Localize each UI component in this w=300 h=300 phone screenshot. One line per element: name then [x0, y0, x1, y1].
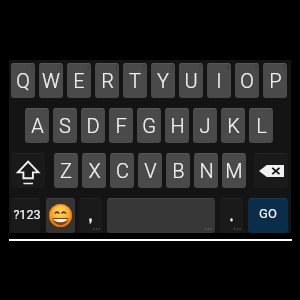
staticText: M — [225, 159, 243, 182]
button[interactable]: L — [249, 108, 273, 143]
staticText: I — [216, 69, 222, 92]
staticText: B — [172, 159, 185, 182]
staticText: H — [170, 114, 185, 137]
staticText: S — [59, 114, 71, 137]
button[interactable]: H — [165, 108, 189, 143]
staticText: Z — [60, 159, 72, 182]
staticText: GO — [259, 206, 277, 221]
staticText: 3 — [86, 64, 90, 72]
button[interactable]: V — [138, 153, 162, 188]
button[interactable]: GO — [248, 198, 288, 233]
button[interactable]: X — [82, 153, 106, 188]
button[interactable]: E — [67, 63, 91, 98]
button[interactable]: Comma — [79, 198, 102, 233]
button[interactable]: S — [53, 108, 77, 143]
staticText: N — [199, 159, 214, 182]
button[interactable]: A — [25, 108, 49, 143]
button[interactable]: Emoji — [46, 198, 75, 233]
button[interactable]: C — [110, 153, 134, 188]
button[interactable]: F — [109, 108, 133, 143]
staticText: R — [101, 69, 114, 92]
button[interactable]: J — [193, 108, 217, 143]
button[interactable]: R — [95, 63, 119, 98]
button[interactable]: Backspace — [254, 153, 288, 188]
staticText: 9 — [254, 64, 258, 72]
button[interactable]: M — [222, 153, 246, 188]
staticText: 8 — [226, 64, 230, 72]
button[interactable]: P — [263, 63, 287, 98]
staticText: C — [116, 159, 129, 182]
button[interactable]: I — [207, 63, 231, 98]
staticText: G — [142, 114, 156, 137]
staticText: O — [240, 69, 254, 92]
staticText: P — [269, 69, 282, 92]
button[interactable]: U — [179, 63, 203, 98]
staticText: V — [144, 159, 157, 182]
staticText: K — [227, 114, 240, 137]
button[interactable]: Z — [54, 153, 78, 188]
button[interactable]: G — [137, 108, 161, 143]
staticText: 1 — [30, 64, 34, 72]
staticText: Y — [157, 69, 169, 92]
staticText: 7 — [198, 64, 202, 72]
button[interactable]: Y — [151, 63, 175, 98]
button[interactable]: Q — [11, 63, 35, 98]
staticText: ?123 — [13, 207, 40, 222]
staticText: 0 — [282, 64, 286, 72]
staticText: W — [42, 69, 60, 92]
button[interactable]: T — [123, 63, 147, 98]
button[interactable]: N — [194, 153, 218, 188]
button[interactable]: O — [235, 63, 259, 98]
staticText: X — [88, 159, 101, 182]
staticText: F — [115, 114, 127, 137]
button[interactable]: K — [221, 108, 245, 143]
staticText: 6 — [170, 64, 174, 72]
staticText: D — [86, 114, 100, 137]
staticText: J — [199, 114, 211, 137]
staticText: E — [73, 69, 85, 92]
button[interactable]: Period — [220, 198, 243, 233]
staticText: Q — [16, 69, 30, 92]
staticText: 2 — [58, 64, 62, 72]
button[interactable]: D — [81, 108, 105, 143]
staticText: U — [184, 69, 198, 92]
button[interactable]: W — [39, 63, 63, 98]
button[interactable]: B — [166, 153, 190, 188]
staticText: L — [256, 114, 267, 137]
button[interactable]: Shift — [11, 153, 45, 188]
staticText: 5 — [142, 64, 146, 72]
staticText: T — [129, 69, 141, 92]
staticText: 4 — [114, 64, 118, 72]
button[interactable]: ?123 — [11, 198, 40, 233]
staticText: A — [31, 114, 44, 137]
